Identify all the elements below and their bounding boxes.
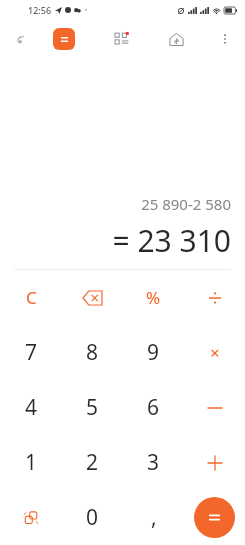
- button[interactable]: 8: [62, 325, 123, 380]
- staticText: 1: [25, 448, 38, 477]
- staticText: ×: [210, 341, 220, 364]
- button[interactable]: [184, 270, 245, 325]
- button[interactable]: %: [123, 270, 184, 325]
- button[interactable]: Backspace: [62, 270, 123, 325]
- staticText: 25 890-2 580: [141, 194, 231, 214]
- staticText: 4: [25, 393, 38, 422]
- button[interactable]: Calculator: [53, 28, 75, 50]
- button[interactable]: 3: [123, 435, 184, 490]
- staticText: 9: [147, 338, 160, 367]
- button[interactable]: 4: [0, 380, 62, 435]
- button[interactable]: [184, 380, 245, 435]
- button[interactable]: ,: [123, 490, 184, 545]
- button[interactable]: ×: [184, 325, 245, 380]
- button[interactable]: [184, 435, 245, 490]
- button[interactable]: 7: [0, 325, 62, 380]
- button[interactable]: C: [0, 270, 62, 325]
- staticText: 8: [86, 338, 99, 367]
- button[interactable]: Equals: [194, 497, 235, 538]
- button[interactable]: 0: [62, 490, 123, 545]
- button[interactable]: Unit converter: [0, 490, 62, 545]
- button[interactable]: 5: [62, 380, 123, 435]
- staticText: 6: [147, 393, 160, 422]
- button[interactable]: 6: [123, 380, 184, 435]
- staticText: 0: [86, 503, 99, 532]
- button[interactable]: Converters: [108, 25, 136, 53]
- button[interactable]: 9: [123, 325, 184, 380]
- staticText: C: [26, 286, 37, 309]
- button[interactable]: 2: [62, 435, 123, 490]
- button[interactable]: More options: [211, 25, 239, 53]
- button[interactable]: Collapse: [6, 25, 34, 53]
- staticText: %: [146, 286, 161, 309]
- staticText: ,: [151, 503, 157, 532]
- button[interactable]: 1: [0, 435, 62, 490]
- staticText: 3: [147, 448, 160, 477]
- button[interactable]: Mortgage calculator: [162, 25, 190, 53]
- staticText: 5: [86, 393, 99, 422]
- staticText: 7: [25, 338, 38, 367]
- staticText: 12:56: [28, 4, 52, 16]
- staticText: = 23 310: [112, 220, 231, 261]
- staticText: 2: [86, 448, 99, 477]
